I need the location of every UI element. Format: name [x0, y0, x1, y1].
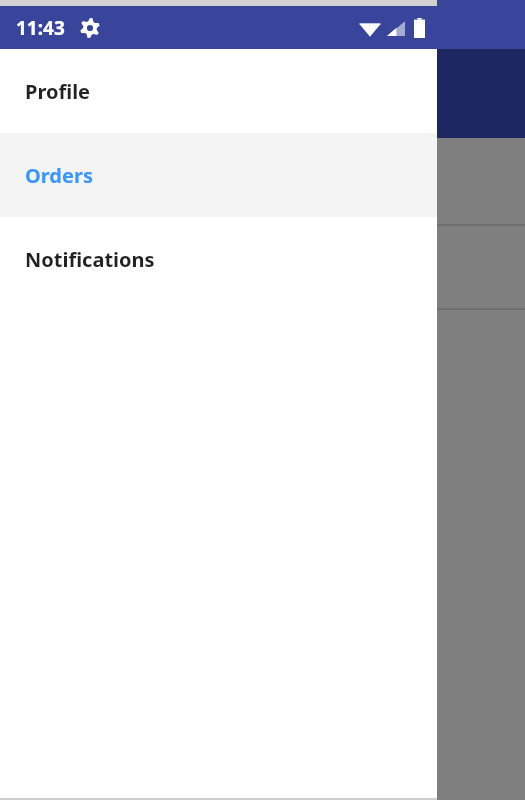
button[interactable]: Notifications [0, 217, 437, 301]
staticText: Profile [25, 78, 91, 105]
staticText: Orders [25, 162, 93, 189]
staticText: Notifications [25, 246, 155, 273]
button[interactable]: Orders [0, 133, 437, 217]
button[interactable]: Profile [0, 49, 437, 133]
staticText: 11:43 [16, 15, 65, 41]
